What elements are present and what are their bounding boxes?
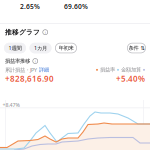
staticText: +8.47% (2, 101, 19, 109)
staticText: 年初来 (58, 45, 73, 51)
button[interactable]: 1週間 (4, 43, 26, 53)
staticText: 1週間 (8, 44, 21, 52)
staticText: i (45, 29, 46, 35)
staticText: 推移グラフ (5, 28, 40, 36)
staticText: 損益率推移 (5, 58, 30, 64)
staticText: 累計損益・JPY (5, 66, 37, 73)
staticText: +5.40% (116, 73, 145, 84)
staticText: 条件 ⇅ (128, 45, 144, 51)
button[interactable]: 1カ月 (29, 43, 51, 53)
button[interactable]: 詳細 (39, 67, 49, 73)
staticText: 69.60% (64, 2, 88, 11)
staticText: 2.65% (20, 2, 40, 11)
staticText: 損益率 (100, 67, 115, 73)
staticText: 金額加算 (121, 67, 141, 73)
staticText: 1カ月 (34, 44, 47, 52)
staticText: 詳細 (39, 67, 49, 73)
staticText: +828,616.90 (5, 73, 54, 84)
staticText: i (35, 58, 36, 64)
button[interactable]: 年初来 (55, 43, 77, 53)
button[interactable]: 条件 ⇅ (127, 43, 146, 53)
